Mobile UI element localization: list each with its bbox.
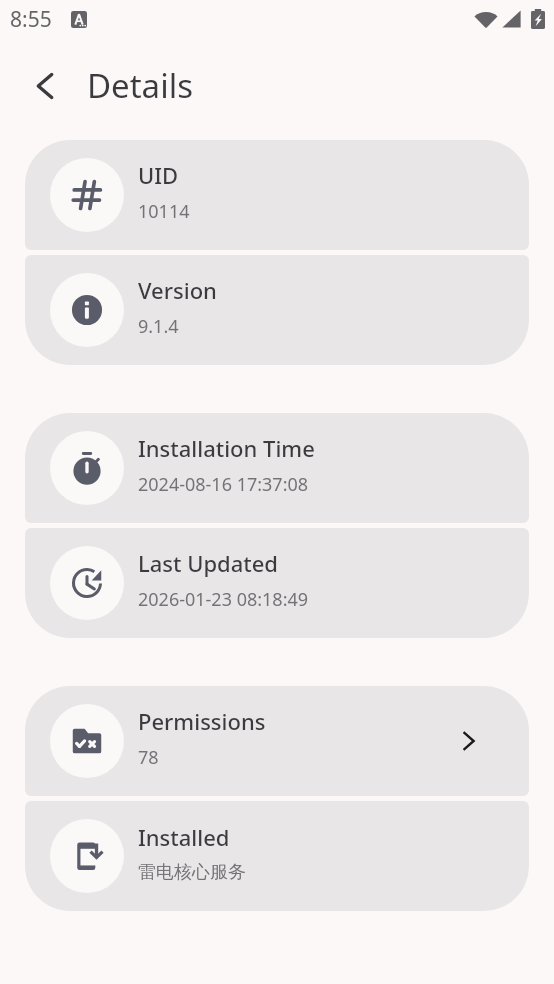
button[interactable]: Installation Time: [25, 413, 529, 523]
staticText: UID: [138, 160, 179, 190]
staticText: 2026-01-23 08:18:49: [138, 587, 309, 612]
staticText: 雷电核心服务: [138, 861, 246, 884]
button[interactable]: Back: [24, 65, 66, 107]
staticText: Installed: [138, 822, 230, 852]
button[interactable]: Permissions: [25, 686, 529, 796]
staticText: 2024-08-16 17:37:08: [138, 472, 309, 497]
button[interactable]: Last Updated: [25, 528, 529, 638]
staticText: Installation Time: [138, 433, 315, 463]
staticText: Last Updated: [138, 548, 278, 578]
staticText: Permissions: [138, 706, 266, 736]
button[interactable]: Version: [25, 255, 529, 365]
staticText: Details: [87, 63, 193, 108]
button[interactable]: Installed: [25, 801, 529, 911]
staticText: 8:55: [10, 5, 52, 34]
staticText: 9.1.4: [138, 314, 179, 339]
staticText: Version: [138, 275, 217, 305]
staticText: 78: [138, 745, 159, 770]
staticText: 10114: [138, 199, 190, 224]
button[interactable]: UID: [25, 140, 529, 250]
